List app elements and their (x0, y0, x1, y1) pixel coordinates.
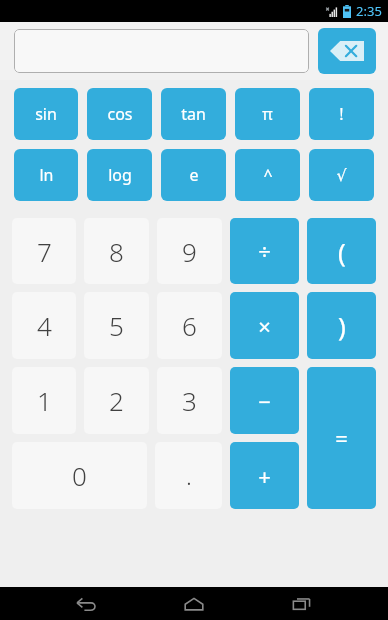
staticText: sin (35, 103, 57, 125)
button[interactable]: ln (14, 149, 78, 201)
button[interactable]: ( (307, 218, 376, 284)
staticText: tan (181, 103, 206, 125)
staticText: 7 (37, 234, 52, 269)
button[interactable]: e (161, 149, 226, 201)
button[interactable]: 3 (157, 367, 222, 434)
button[interactable]: 8 (84, 218, 149, 284)
button[interactable]: 2 (84, 367, 149, 434)
button[interactable]: 5 (84, 292, 149, 359)
button[interactable]: 6 (157, 292, 222, 359)
staticText: 8 (109, 234, 124, 269)
button[interactable]: 7 (12, 218, 76, 284)
button[interactable]: cos (87, 88, 152, 140)
staticText: ln (39, 164, 54, 186)
button[interactable]: . (155, 442, 222, 509)
button[interactable]: ^ (235, 149, 300, 201)
staticText: 4 (37, 308, 52, 343)
staticText: ) (338, 308, 346, 343)
button[interactable]: Recent apps (280, 587, 324, 620)
staticText: = (335, 423, 348, 453)
staticText: log (108, 164, 132, 186)
staticText: 1 (37, 383, 52, 418)
button[interactable]: Backspace (318, 28, 376, 74)
staticText: ^ (263, 164, 273, 186)
staticText: ( (338, 234, 346, 269)
button[interactable]: ) (307, 292, 376, 359)
button[interactable]: × (230, 292, 299, 359)
staticText: 6 (182, 308, 197, 343)
button[interactable]: 0 (12, 442, 147, 509)
button[interactable]: 1 (12, 367, 76, 434)
staticText: . (186, 459, 192, 492)
staticText: 9 (182, 234, 197, 269)
staticText: ÷ (258, 236, 271, 266)
staticText: + (258, 461, 271, 491)
staticText: √ (336, 166, 347, 185)
staticText: 2:35 (356, 2, 382, 20)
button[interactable]: sin (14, 88, 78, 140)
staticText: 0 (72, 458, 87, 493)
staticText: cos (107, 103, 133, 125)
button[interactable]: = (307, 367, 376, 509)
button[interactable]: 4 (12, 292, 76, 359)
button[interactable]: + (230, 442, 299, 509)
staticText: 5 (109, 308, 124, 343)
staticText: 2 (109, 383, 124, 418)
button[interactable]: 9 (157, 218, 222, 284)
button[interactable]: Back (64, 587, 108, 620)
button[interactable]: π (235, 88, 300, 140)
button[interactable]: − (230, 367, 299, 434)
button[interactable] (14, 29, 309, 73)
staticText: 3 (182, 383, 197, 418)
button[interactable]: tan (161, 88, 226, 140)
staticText: − (258, 386, 271, 416)
staticText: e (189, 164, 199, 186)
button[interactable]: ÷ (230, 218, 299, 284)
button[interactable]: Home (172, 587, 216, 620)
staticText: π (262, 103, 273, 125)
staticText: ! (339, 103, 344, 125)
button[interactable]: √ (309, 149, 374, 201)
button[interactable]: ! (309, 88, 374, 140)
button[interactable]: log (87, 149, 152, 201)
staticText: × (258, 311, 271, 341)
